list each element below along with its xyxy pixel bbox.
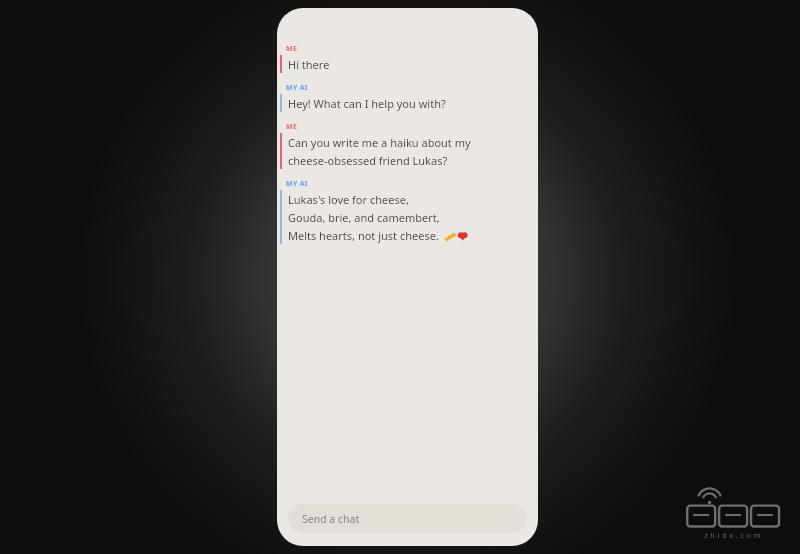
button[interactable]: MY AI bbox=[277, 179, 538, 244]
staticText: Gouda, brie, and camembert, bbox=[288, 210, 440, 225]
button[interactable]: Send a chat bbox=[288, 504, 527, 533]
staticText: ME bbox=[286, 122, 298, 132]
staticText: MY AI bbox=[286, 179, 308, 189]
staticText: Send a chat bbox=[302, 512, 360, 526]
button[interactable]: MY AI bbox=[277, 83, 538, 112]
staticText: MY AI bbox=[286, 83, 308, 93]
button[interactable]: ME bbox=[277, 44, 538, 73]
staticText: z h i d x . c o m bbox=[704, 531, 761, 541]
button[interactable]: ME bbox=[277, 122, 538, 169]
staticText: Can you write me a haiku about my bbox=[288, 135, 471, 150]
staticText: Melts hearts, not just cheese. bbox=[288, 228, 439, 243]
staticText: Hey! What can I help you with? bbox=[288, 96, 446, 111]
staticText: cheese-obsessed friend Lukas? bbox=[288, 153, 448, 168]
staticText: ME bbox=[286, 44, 298, 54]
staticText: Hi there bbox=[288, 57, 330, 72]
staticText: Lukas's love for cheese, bbox=[288, 192, 409, 207]
